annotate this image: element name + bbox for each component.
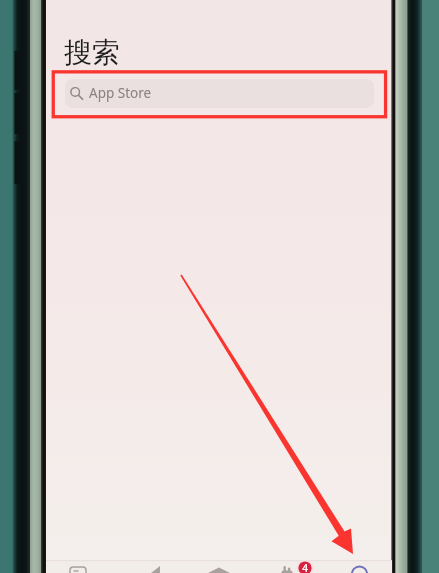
staticText: App Store [89, 84, 152, 102]
button[interactable]: 搜索 [64, 35, 120, 70]
button[interactable]: Apps [185, 560, 254, 573]
button[interactable]: App Store [65, 79, 374, 108]
staticText: 搜索 [64, 35, 120, 70]
button[interactable]: 4 updates [298, 561, 312, 573]
button[interactable]: Games [116, 560, 185, 573]
button[interactable]: Arcade [254, 560, 323, 573]
button[interactable]: Search [323, 560, 392, 573]
button[interactable]: Today [46, 560, 116, 573]
staticText: 4 [302, 561, 308, 573]
